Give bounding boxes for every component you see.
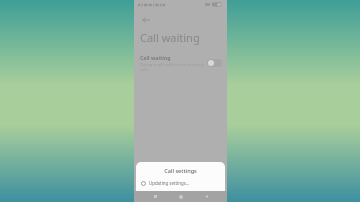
staticText: Call settings [136, 167, 225, 175]
button[interactable]: Back [202, 192, 211, 201]
staticText: Updating settings... [149, 180, 190, 186]
button[interactable]: Recents [151, 192, 160, 201]
button[interactable]: Home [176, 192, 185, 201]
button[interactable]: Call waiting toggle [207, 59, 222, 67]
staticText: Call waiting [140, 30, 200, 45]
button[interactable]: Back [139, 13, 153, 27]
button[interactable]: Call waiting [134, 52, 227, 74]
staticText: During a call, notify me of incoming cal… [140, 62, 204, 72]
staticText: Call waiting [140, 54, 171, 61]
